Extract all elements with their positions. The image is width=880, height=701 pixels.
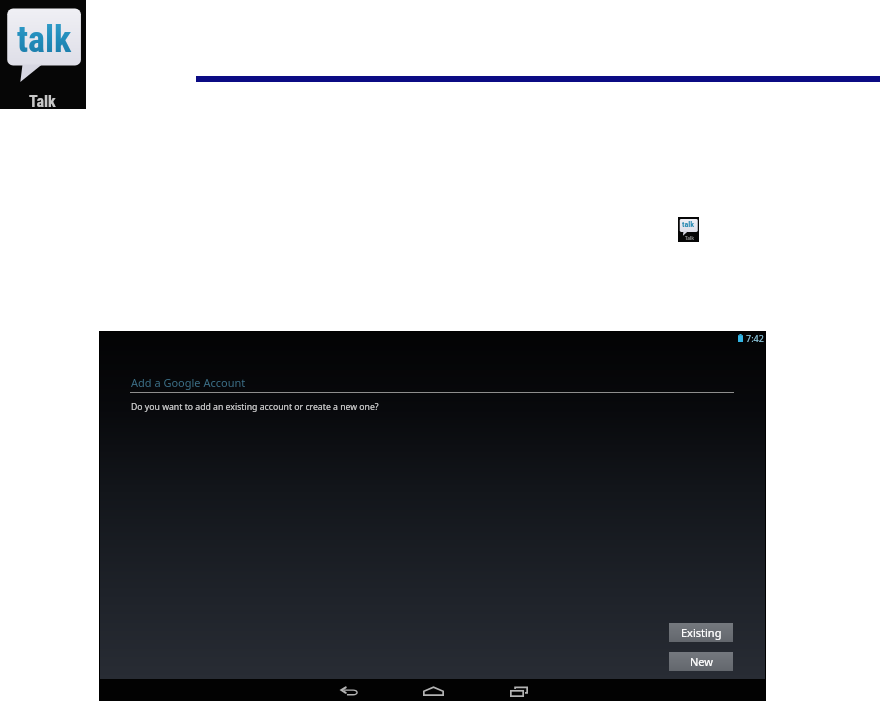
button[interactable]: Talk app icon — [0, 0, 86, 109]
button[interactable]: Talk app icon — [678, 217, 699, 242]
staticText: 7:42 — [746, 332, 764, 343]
staticText: Talk — [29, 92, 56, 111]
button[interactable]: Home — [415, 679, 451, 701]
button[interactable]: New — [669, 652, 733, 671]
staticText: Talk — [685, 235, 695, 241]
staticText: Add a Google Account — [131, 375, 246, 390]
staticText: Do you want to add an existing account o… — [131, 401, 379, 413]
button[interactable]: Back — [331, 679, 367, 701]
staticText: New — [690, 654, 713, 669]
staticText: talk — [682, 220, 695, 229]
button[interactable]: Recent apps — [501, 679, 537, 701]
staticText: Existing — [681, 625, 722, 640]
staticText: talk — [17, 19, 72, 61]
button[interactable]: Existing — [669, 623, 733, 642]
